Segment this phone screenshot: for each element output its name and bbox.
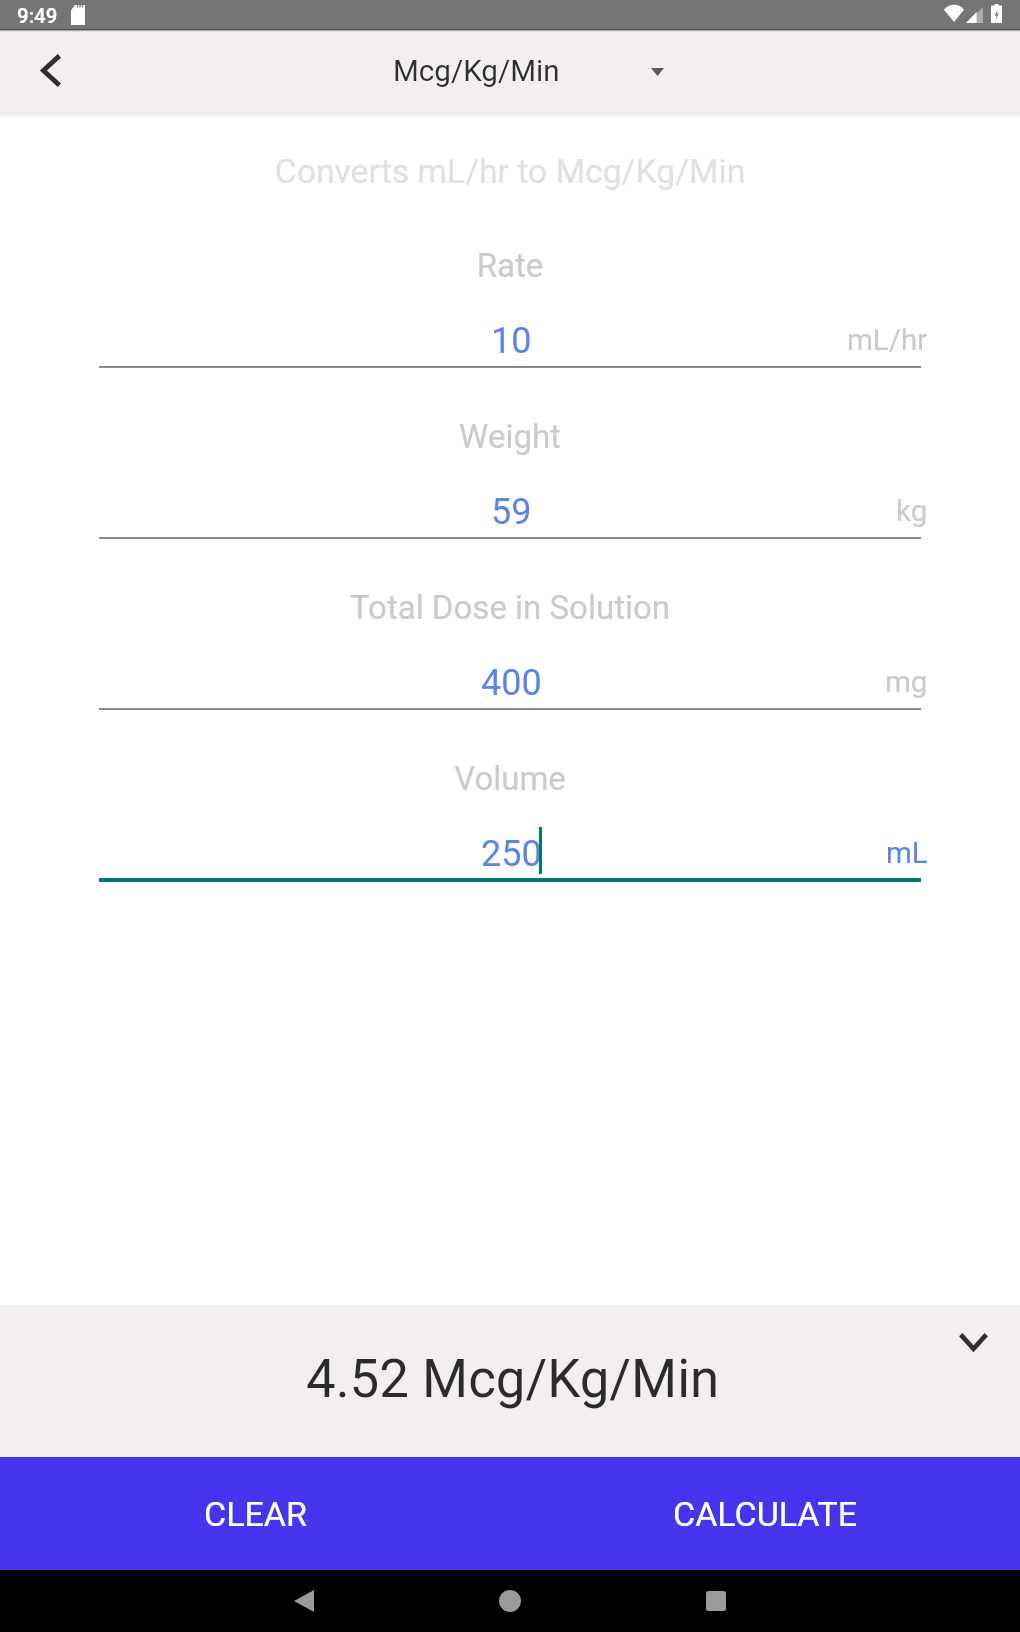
staticText: Rate <box>0 246 1020 285</box>
staticText: 10 <box>491 320 532 362</box>
button[interactable]: Select unit <box>630 42 682 94</box>
staticText: Weight <box>0 417 1020 456</box>
button[interactable]: Volume field, 250 mL <box>99 751 921 883</box>
button[interactable]: Total Dose in Solution field, 400 mg <box>99 580 921 712</box>
button[interactable]: Back <box>11 32 89 110</box>
staticText: 400 <box>481 662 542 704</box>
staticText: CLEAR <box>204 1494 307 1534</box>
staticText: mL <box>886 836 928 871</box>
staticText: mL/hr <box>847 323 928 358</box>
staticText: CALCULATE <box>673 1494 857 1534</box>
staticText: 59 <box>491 491 532 533</box>
staticText: 4.52 Mcg/Kg/Min <box>306 1348 720 1410</box>
staticText: Total Dose in Solution <box>0 588 1020 627</box>
staticText: mg <box>885 665 928 700</box>
button[interactable]: Recent apps <box>686 1571 746 1631</box>
staticText: Volume <box>0 759 1020 798</box>
button[interactable]: Weight field, 59 kg <box>99 409 921 541</box>
staticText: kg <box>896 494 928 529</box>
staticText: 250 <box>481 833 542 875</box>
button[interactable]: Collapse result <box>942 1311 1004 1373</box>
staticText: 9:49 <box>17 4 58 28</box>
button[interactable]: Home <box>480 1571 540 1631</box>
button[interactable]: Back <box>274 1571 334 1631</box>
button[interactable]: CLEAR <box>0 1457 510 1570</box>
staticText: Converts mL/hr to Mcg/Kg/Min <box>0 152 1020 191</box>
staticText: Mcg/Kg/Min <box>393 54 560 89</box>
button[interactable]: CALCULATE <box>510 1457 1020 1570</box>
button[interactable]: Rate field, 10 mL/hr <box>99 238 921 370</box>
